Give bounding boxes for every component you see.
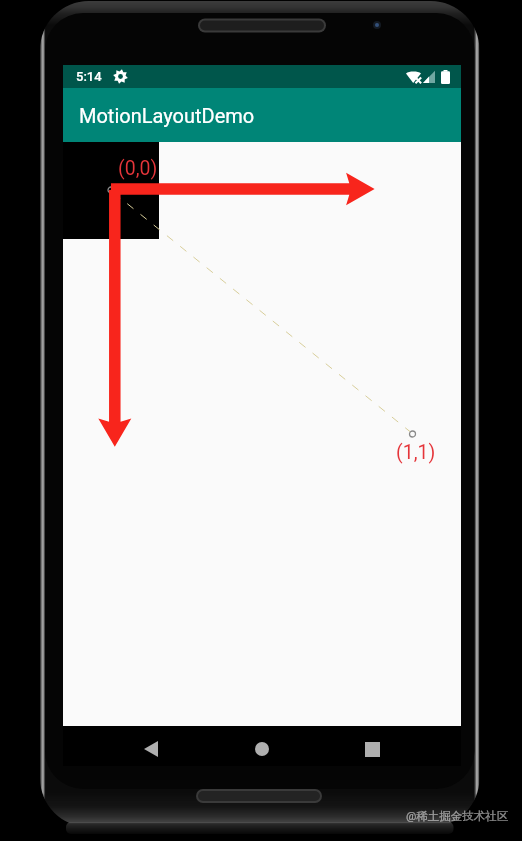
button[interactable]: Back	[131, 729, 171, 769]
staticText: @稀土掘金技术社区	[406, 809, 509, 823]
staticText: 5:14	[76, 69, 102, 84]
staticText: (0,0)	[118, 157, 158, 180]
staticText: (1,1)	[396, 441, 436, 464]
button[interactable]: Recents	[352, 729, 392, 769]
staticText: MotionLayoutDemo	[79, 104, 255, 127]
button[interactable]: Home	[242, 729, 282, 769]
button[interactable]: MotionLayoutDemo	[63, 88, 461, 142]
